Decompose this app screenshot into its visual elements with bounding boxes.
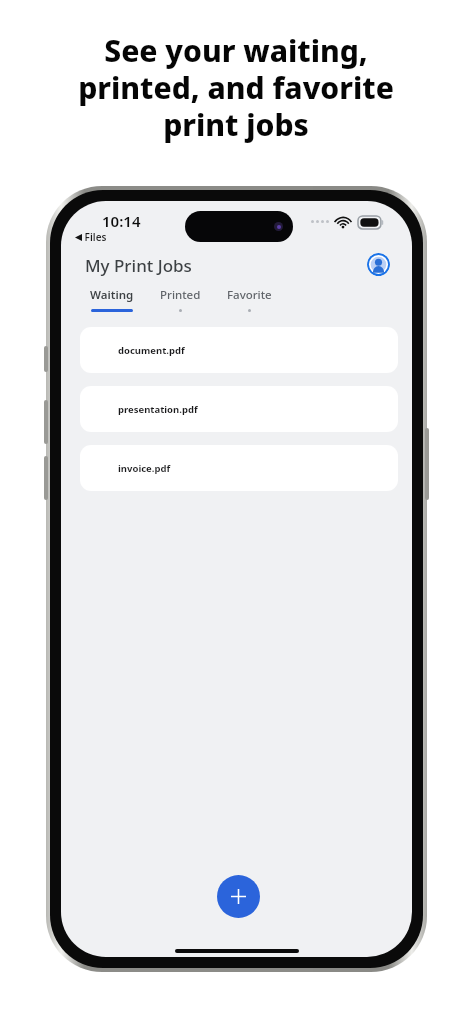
staticText: See your waiting, printed, and favorite … [78,30,394,145]
staticText: 10:14 [102,211,141,231]
staticText: Waiting [90,287,134,303]
button[interactable]: Favorite [225,287,274,312]
staticText: My Print Jobs [85,254,192,277]
staticText: Favorite [227,287,272,303]
staticText: Files [82,230,107,244]
staticText: presentation.pdf [118,403,198,416]
button[interactable]: presentation.pdf [80,386,398,432]
staticText: invoice.pdf [118,462,171,475]
button[interactable]: Waiting [88,287,136,312]
button[interactable]: document.pdf [80,327,398,373]
button[interactable]: Back to Files [74,230,108,244]
button[interactable]: invoice.pdf [80,445,398,491]
button[interactable]: Account [367,253,390,276]
staticText: document.pdf [118,344,185,357]
button[interactable]: Add print job [217,875,260,918]
button[interactable]: Printed [158,287,203,312]
staticText: Printed [160,287,201,303]
